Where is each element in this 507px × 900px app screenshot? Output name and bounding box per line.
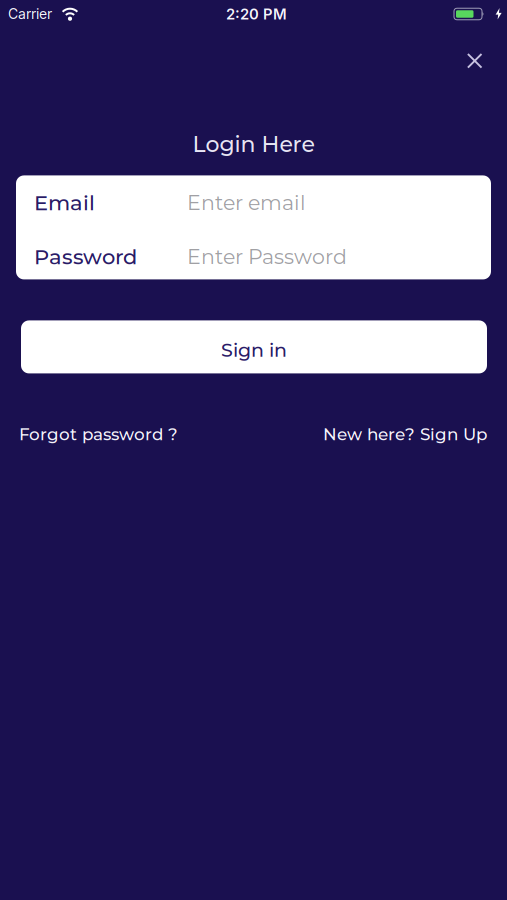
button[interactable]: New here? Sign Up (323, 424, 487, 444)
staticText: Enter Password (187, 244, 347, 269)
button[interactable]: Password (16, 232, 491, 282)
staticText: New here? Sign Up (323, 424, 487, 444)
staticText: Password (34, 244, 137, 269)
staticText: Sign in (221, 338, 287, 361)
button[interactable]: Forgot password ? (19, 424, 178, 444)
staticText: 2:20 PM (226, 5, 287, 23)
staticText: Carrier (8, 5, 52, 22)
button[interactable]: Sign in (21, 320, 487, 373)
staticText: Email (34, 190, 95, 215)
staticText: Enter email (187, 190, 306, 215)
button[interactable]: Email (16, 178, 491, 228)
staticText: Forgot password ? (19, 424, 178, 444)
button[interactable] (457, 43, 492, 79)
staticText: Login Here (192, 131, 314, 157)
